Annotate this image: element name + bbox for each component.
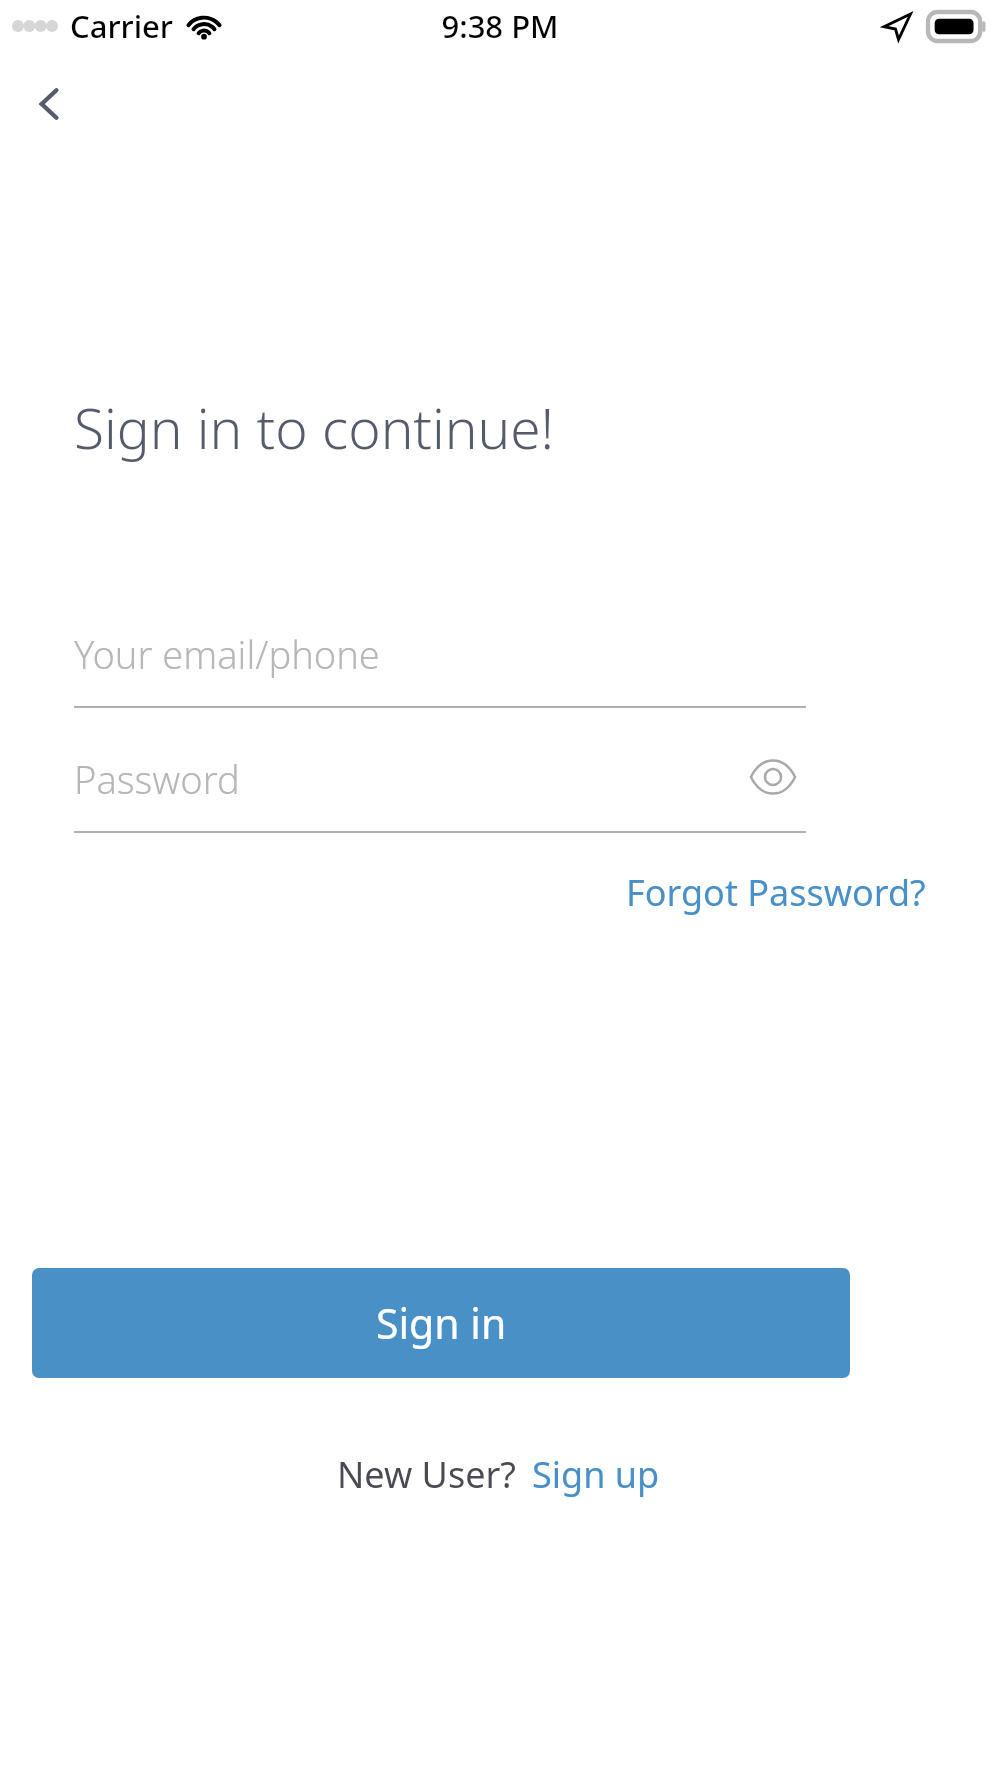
staticText: Sign in to continue! bbox=[74, 390, 555, 465]
staticText: 9:38 PM bbox=[441, 5, 559, 47]
button[interactable]: Sign up bbox=[528, 1442, 664, 1507]
staticText: New User? bbox=[337, 1450, 516, 1499]
staticText: Sign up bbox=[532, 1450, 660, 1499]
staticText: Password bbox=[74, 753, 240, 805]
button[interactable]: Back bbox=[18, 72, 82, 136]
staticText: Forgot Password? bbox=[626, 868, 926, 917]
button[interactable]: Sign in bbox=[32, 1268, 850, 1378]
staticText: Your email/phone bbox=[74, 628, 380, 680]
button[interactable]: Forgot Password? bbox=[622, 860, 930, 925]
button[interactable]: Password bbox=[74, 737, 806, 833]
button[interactable]: Show password bbox=[740, 744, 806, 810]
staticText: Carrier bbox=[70, 5, 173, 47]
button[interactable]: Your email/phone bbox=[74, 612, 806, 708]
staticText: Sign in bbox=[376, 1295, 507, 1351]
